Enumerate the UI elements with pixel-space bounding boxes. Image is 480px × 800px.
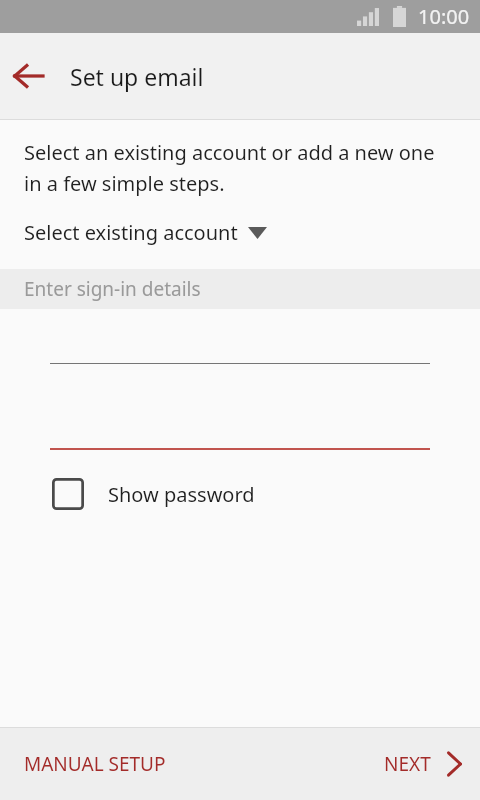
- button[interactable]: NEXT: [368, 728, 480, 800]
- staticText: MANUAL SETUP: [24, 751, 166, 777]
- staticText: 10:00: [418, 3, 470, 30]
- staticText: Set up email: [70, 61, 204, 92]
- staticText: NEXT: [384, 751, 431, 777]
- button[interactable]: Show password: [0, 474, 480, 514]
- button[interactable]: MANUAL SETUP: [0, 728, 190, 800]
- staticText: Select existing account: [24, 219, 238, 246]
- staticText: Enter sign-in details: [24, 276, 201, 302]
- button[interactable]: Navigate up: [0, 48, 56, 104]
- staticText: Select an existing account or add a new …: [24, 139, 440, 197]
- staticText: Show password: [108, 481, 255, 508]
- button[interactable]: Select existing account: [0, 217, 480, 248]
